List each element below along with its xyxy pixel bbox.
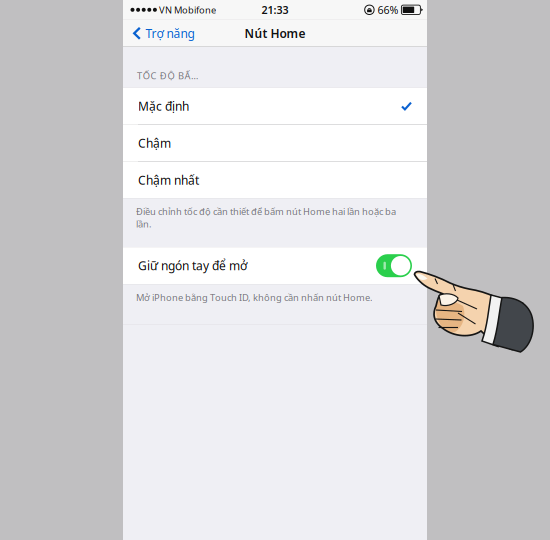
staticText: 66% [374, 3, 401, 17]
staticText: Chậm nhất [138, 172, 199, 188]
staticText: Chậm [138, 135, 171, 151]
button[interactable]: Giữ ngón tay để mở [123, 247, 427, 284]
staticText: Giữ ngón tay để mở [138, 258, 247, 274]
button[interactable]: Trợ năng [123, 20, 202, 47]
staticText: VN Mobifone [157, 4, 216, 16]
staticText: TỐC ĐỘ BẤM [137, 69, 199, 82]
staticText: Mở iPhone bằng Touch ID, không cần nhấn … [136, 291, 373, 304]
staticText: Nút Home [244, 25, 305, 41]
staticText: Trợ năng [145, 25, 194, 41]
staticText: Điều chỉnh tốc độ cần thiết để bấm nút H… [136, 205, 396, 230]
staticText: 21:33 [261, 3, 288, 17]
button[interactable]: Chậm nhất [123, 162, 427, 198]
staticText: Mặc định [138, 98, 189, 114]
button[interactable]: Mặc định [123, 88, 427, 124]
button[interactable]: Chậm [123, 125, 427, 161]
